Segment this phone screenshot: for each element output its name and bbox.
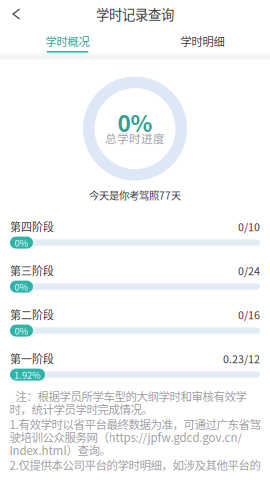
staticText: 第一阶段 [10,351,54,366]
staticText: 总学时进度 [105,130,165,146]
staticText: 0% [117,106,152,138]
staticText: 0.23/12 [223,351,260,366]
staticText: 今天是你考驾照77天 [89,188,181,203]
staticText: 学时概况 [45,33,89,49]
staticText: 0/24 [238,263,260,278]
staticText: 0% [14,236,28,249]
staticText: 学时记录查询 [96,4,174,24]
button[interactable]: 学时概况 [0,28,135,54]
staticText: 注：根据学员所学车型的大纲学时和审核有效学时，统计学员学时完成情况。 [9,390,246,415]
staticText: 1.92% [14,368,41,381]
staticText: 第二阶段 [10,307,54,322]
staticText: 第三阶段 [10,263,54,278]
staticText: 2.仅提供本公司平台的学时明细，如涉及其他平台的 [9,458,260,471]
staticText: 0% [14,324,28,337]
staticText: 学时明细 [180,33,224,49]
button[interactable]: Back [0,0,30,28]
staticText: 1.有效学时以省平台最终数据为准，可通过广东省驾驶培训公众服务网（https:/… [9,417,260,456]
staticText: 第四阶段 [10,219,54,234]
staticText: 0% [14,280,28,293]
button[interactable]: 学时明细 [135,28,270,54]
staticText: 0/16 [238,307,260,322]
staticText: 0/10 [238,219,260,234]
